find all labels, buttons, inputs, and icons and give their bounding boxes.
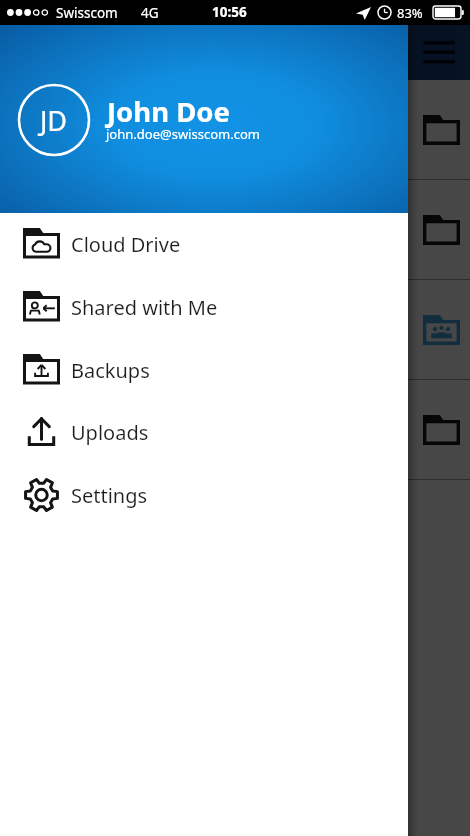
button[interactable] (0, 80, 470, 179)
button[interactable]: Settings (0, 464, 408, 526)
staticText: Uploads (71, 419, 149, 446)
staticText: JD (40, 102, 68, 139)
staticText: 4G (141, 4, 159, 22)
staticText: Settings (71, 482, 148, 509)
button[interactable]: Open navigation drawer (415, 28, 463, 76)
button[interactable]: Uploads (0, 401, 408, 463)
staticText: Backups (71, 357, 150, 384)
staticText: john.doe@swisscom.com (106, 125, 260, 143)
button[interactable] (0, 180, 470, 279)
staticText: 10:56 (212, 3, 247, 21)
button[interactable]: Cloud Drive (0, 213, 408, 275)
button[interactable] (0, 380, 470, 479)
staticText: 83% (397, 4, 423, 22)
staticText: Cloud Drive (71, 231, 181, 258)
staticText: Shared with Me (71, 294, 218, 321)
staticText: Swisscom (56, 4, 118, 22)
staticText: John Doe (107, 93, 230, 130)
button[interactable] (0, 280, 470, 379)
button[interactable]: Backups (0, 339, 408, 401)
button[interactable]: Shared with Me (0, 276, 408, 338)
